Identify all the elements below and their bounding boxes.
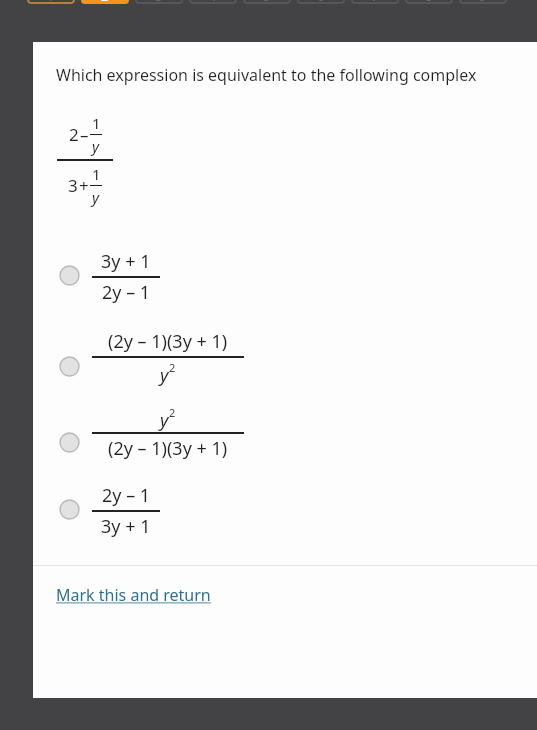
button[interactable]: 2y – 1 <box>33 483 537 539</box>
staticText: 1 <box>92 164 101 184</box>
staticText: 5 <box>263 0 271 4</box>
staticText: (2y – 1)(3y + 1) <box>108 436 228 461</box>
staticText: 1 <box>47 0 55 4</box>
button[interactable]: 8 <box>405 0 453 4</box>
staticText: 6 <box>317 0 325 4</box>
staticText: y <box>92 187 100 207</box>
staticText: + <box>79 174 89 197</box>
staticText: Mark this and return <box>56 584 211 606</box>
button[interactable]: (2y – 1)(3y + 1) <box>33 329 537 385</box>
button[interactable]: 3 <box>135 0 183 4</box>
staticText: 2 <box>169 405 176 420</box>
staticText: 2 <box>69 123 79 146</box>
staticText: y <box>160 363 169 388</box>
staticText: y <box>160 408 169 433</box>
staticText: 3y + 1 <box>101 249 151 274</box>
button[interactable]: 4 <box>189 0 237 4</box>
staticText: Which expression is equivalent to the fo… <box>56 64 477 86</box>
staticText: y <box>92 136 100 156</box>
staticText: – <box>80 123 89 146</box>
button[interactable]: 3y + 1 <box>33 249 537 305</box>
staticText: 3y + 1 <box>101 514 151 539</box>
staticText: (2y – 1)(3y + 1) <box>108 329 228 354</box>
staticText: 2 <box>101 0 109 4</box>
staticText: 3 <box>68 174 78 197</box>
staticText: 2y – 1 <box>102 483 151 508</box>
button[interactable]: 9 <box>459 0 507 4</box>
staticText: 7 <box>371 0 379 4</box>
staticText: 1 <box>92 113 101 133</box>
staticText: 9 <box>479 0 487 4</box>
button[interactable]: 2 <box>81 0 129 4</box>
staticText: 8 <box>425 0 433 4</box>
staticText: 2y – 1 <box>102 280 151 305</box>
button[interactable]: 6 <box>297 0 345 4</box>
button[interactable]: y <box>33 405 537 461</box>
button[interactable]: 1 <box>27 0 75 4</box>
staticText: 4 <box>209 0 217 4</box>
button[interactable]: 7 <box>351 0 399 4</box>
button[interactable]: 5 <box>243 0 291 4</box>
button[interactable]: Mark this and return <box>56 584 211 606</box>
staticText: 3 <box>155 0 163 4</box>
staticText: 2 <box>169 360 176 375</box>
